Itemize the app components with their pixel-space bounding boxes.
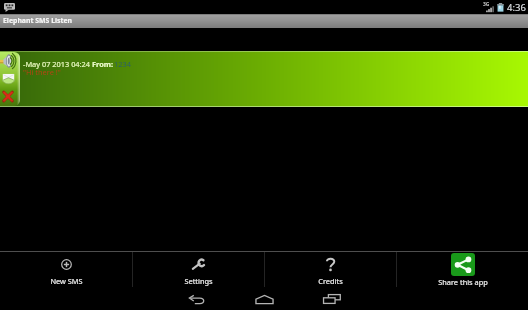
staticText: Share this app <box>438 277 488 287</box>
button[interactable]: Recent apps <box>298 289 366 309</box>
staticText: 1234 <box>114 59 131 69</box>
staticText: Settings <box>184 276 213 286</box>
staticText: Credits <box>318 276 343 286</box>
button[interactable]: Open message <box>2 73 15 85</box>
button[interactable]: Play message aloud <box>0 54 17 68</box>
button[interactable]: New SMS <box>0 252 132 287</box>
staticText: New SMS <box>50 276 83 286</box>
button[interactable]: Delete message <box>2 91 14 102</box>
button[interactable]: Settings <box>133 252 264 287</box>
button[interactable]: Credits <box>265 252 396 287</box>
staticText: "Hi there !" <box>23 67 61 77</box>
button[interactable]: Back <box>162 289 230 309</box>
button[interactable]: Share this app <box>397 252 528 287</box>
staticText: From: <box>92 59 114 69</box>
button[interactable]: Home <box>230 289 298 309</box>
staticText: Elephant SMS Listen <box>3 16 73 25</box>
button[interactable]: Play message aloud <box>0 51 528 107</box>
staticText: 3G <box>483 1 490 8</box>
staticText: 4:36 <box>507 1 526 14</box>
staticText: -May 07 2013 04:24 <box>23 59 92 69</box>
